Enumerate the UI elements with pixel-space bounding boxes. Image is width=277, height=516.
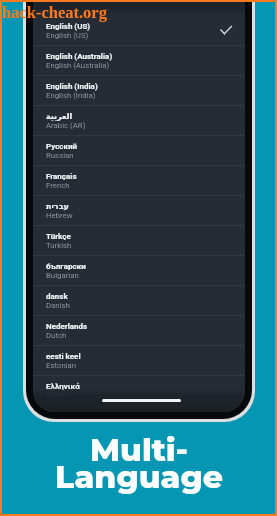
- staticText: български: [46, 262, 86, 271]
- button[interactable]: العربية: [33, 106, 245, 136]
- staticText: English (Australia): [46, 52, 113, 61]
- button[interactable]: eesti keel: [33, 346, 245, 376]
- button[interactable]: Türkçe: [33, 226, 245, 256]
- staticText: hack-cheat.org: [2, 3, 107, 21]
- staticText: Nederlands: [46, 322, 88, 331]
- staticText: English (US): [46, 31, 89, 40]
- button[interactable]: Nederlands: [33, 316, 245, 346]
- staticText: العربية: [46, 112, 73, 121]
- staticText: Bulgarian: [46, 271, 79, 280]
- staticText: English (US): [46, 22, 91, 31]
- staticText: English (India): [46, 91, 96, 100]
- staticText: French: [46, 181, 70, 190]
- staticText: Hebrew: [46, 211, 73, 220]
- staticText: Language: [55, 458, 223, 496]
- staticText: dansk: [46, 292, 68, 301]
- staticText: English (India): [46, 82, 98, 91]
- staticText: Türkçe: [46, 232, 71, 241]
- button[interactable]: English (India): [33, 76, 245, 106]
- other: Home gesture bar: [102, 399, 181, 402]
- staticText: Arabic (AR): [46, 121, 86, 130]
- button[interactable]: English (Australia): [33, 46, 245, 76]
- staticText: eesti keel: [46, 352, 81, 361]
- staticText: Français: [46, 172, 77, 181]
- staticText: Estonian: [46, 361, 77, 370]
- staticText: Russian: [46, 151, 74, 160]
- button[interactable]: Русский: [33, 136, 245, 166]
- staticText: Turkish: [46, 241, 72, 250]
- button[interactable]: Français: [33, 166, 245, 196]
- staticText: Ελληνικά: [46, 382, 80, 391]
- button[interactable]: български: [33, 256, 245, 286]
- staticText: Greek: [46, 391, 67, 400]
- staticText: Multi-: [90, 431, 188, 469]
- staticText: Danish: [46, 301, 70, 310]
- button[interactable]: dansk: [33, 286, 245, 316]
- button[interactable]: English (US): [33, 16, 245, 46]
- staticText: Русский: [46, 142, 78, 151]
- staticText: English (Australia): [46, 61, 110, 70]
- button[interactable]: Ελληνικά: [33, 376, 245, 406]
- staticText: Dutch: [46, 331, 67, 340]
- staticText: עברית: [46, 202, 69, 211]
- button[interactable]: עברית: [33, 196, 245, 226]
